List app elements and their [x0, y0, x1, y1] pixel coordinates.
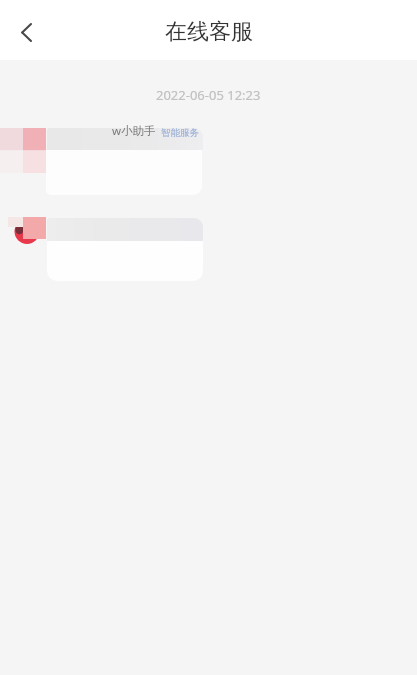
staticText: 2022-06-05 12:23 — [156, 86, 261, 104]
button[interactable] — [47, 128, 203, 195]
button[interactable]: Assistant avatar — [0, 128, 46, 173]
button[interactable]: Back — [4, 10, 48, 54]
staticText: 在线客服 — [165, 18, 253, 46]
button[interactable]: User avatar — [0, 210, 50, 250]
staticText: w小助手 — [112, 123, 156, 139]
button[interactable] — [47, 218, 203, 281]
staticText: 智能服务 — [161, 127, 199, 139]
